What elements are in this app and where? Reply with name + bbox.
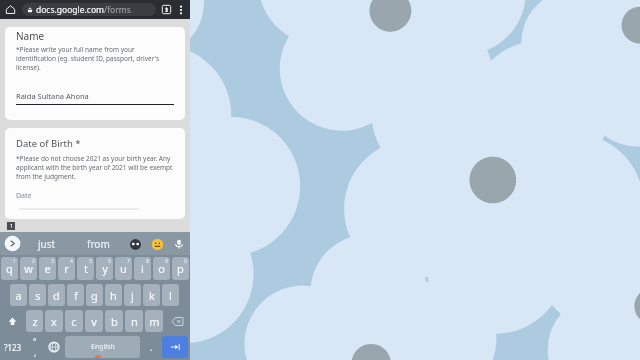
button[interactable]: from bbox=[72, 232, 124, 255]
button[interactable]: z bbox=[26, 310, 43, 332]
button[interactable]: o bbox=[153, 257, 170, 280]
button[interactable]: just bbox=[21, 232, 72, 255]
button[interactable]: b bbox=[105, 310, 123, 332]
staticText: g bbox=[91, 288, 98, 303]
staticText: 1 bbox=[13, 258, 16, 265]
button[interactable]: f bbox=[67, 284, 84, 306]
staticText: i bbox=[141, 261, 144, 276]
staticText: 9 bbox=[165, 258, 168, 265]
button[interactable]: Space bbox=[65, 336, 140, 358]
staticText: y bbox=[102, 261, 108, 276]
button[interactable]: a bbox=[10, 284, 27, 306]
button[interactable]: More suggestions bbox=[4, 235, 21, 252]
button[interactable]: d bbox=[48, 284, 65, 306]
staticText: docs.google.com bbox=[36, 4, 104, 16]
button[interactable]: r bbox=[58, 257, 75, 280]
button[interactable]: i bbox=[134, 257, 151, 280]
staticText: just bbox=[38, 237, 56, 251]
button[interactable]: c bbox=[65, 310, 83, 332]
staticText: 1 bbox=[10, 223, 13, 230]
staticText: o bbox=[158, 261, 165, 276]
button[interactable]: n bbox=[125, 310, 143, 332]
staticText: n bbox=[131, 314, 138, 329]
button[interactable]: Backspace bbox=[164, 308, 190, 334]
button[interactable]: v bbox=[85, 310, 103, 332]
staticText: from bbox=[87, 237, 110, 251]
staticText: p bbox=[177, 261, 184, 276]
button[interactable]: p bbox=[172, 257, 189, 280]
staticText: r bbox=[64, 261, 69, 276]
staticText: ?123 bbox=[4, 342, 22, 353]
staticText: 3 bbox=[51, 258, 54, 265]
staticText: t bbox=[84, 261, 88, 276]
staticText: u bbox=[120, 261, 127, 276]
button[interactable]: Enter bbox=[162, 336, 188, 358]
button[interactable]: w bbox=[20, 257, 37, 280]
staticText: d bbox=[53, 288, 60, 303]
staticText: x bbox=[51, 314, 57, 329]
staticText: f bbox=[74, 288, 78, 303]
button[interactable]: g bbox=[86, 284, 103, 306]
staticText: 0 bbox=[184, 258, 187, 265]
button[interactable]: s bbox=[29, 284, 46, 306]
staticText: , bbox=[34, 347, 37, 358]
button[interactable]: Emoji bbox=[146, 233, 168, 255]
staticText: s bbox=[35, 288, 41, 303]
staticText: c bbox=[71, 314, 77, 329]
staticText: 2 bbox=[32, 258, 35, 265]
staticText: ° bbox=[33, 336, 37, 347]
staticText: w bbox=[24, 261, 33, 276]
button[interactable]: docs.google.com bbox=[22, 3, 156, 16]
staticText: e bbox=[44, 261, 51, 276]
button[interactable]: j bbox=[124, 284, 141, 306]
staticText: z bbox=[32, 314, 38, 329]
staticText: h bbox=[110, 288, 117, 303]
staticText: English bbox=[91, 342, 115, 352]
button[interactable]: y bbox=[96, 257, 113, 280]
staticText: j bbox=[131, 288, 134, 303]
staticText: q bbox=[6, 261, 13, 276]
button[interactable]: Tabs bbox=[161, 4, 172, 15]
staticText: v bbox=[91, 314, 97, 329]
button[interactable]: e bbox=[39, 257, 56, 280]
button[interactable]: Shift bbox=[0, 308, 25, 334]
staticText: 8 bbox=[146, 258, 149, 265]
button[interactable]: l bbox=[162, 284, 179, 306]
button[interactable]: Alien emoji bbox=[124, 233, 146, 255]
button[interactable]: . bbox=[142, 334, 160, 360]
button[interactable]: m bbox=[145, 310, 163, 332]
button[interactable]: Change language bbox=[44, 334, 63, 360]
staticText: k bbox=[149, 288, 155, 303]
button[interactable]: x bbox=[45, 310, 63, 332]
staticText: a bbox=[15, 288, 22, 303]
staticText: l bbox=[169, 288, 172, 303]
button[interactable]: h bbox=[105, 284, 122, 306]
staticText: *Please do not choose 2021 as your birth… bbox=[16, 154, 174, 181]
button[interactable]: Page indicator bbox=[7, 222, 15, 230]
staticText: /forms bbox=[104, 4, 131, 16]
staticText: m bbox=[149, 314, 160, 329]
staticText: 7 bbox=[127, 258, 130, 265]
button[interactable]: q bbox=[1, 257, 18, 280]
staticText: 4 bbox=[70, 258, 73, 265]
staticText: Date bbox=[16, 191, 32, 201]
staticText: 6 bbox=[108, 258, 111, 265]
staticText: 3 bbox=[165, 6, 169, 13]
staticText: Raida Sultana Ahona bbox=[16, 91, 89, 101]
button[interactable]: Home bbox=[5, 4, 16, 15]
button[interactable]: k bbox=[143, 284, 160, 306]
button[interactable]: ° bbox=[26, 334, 44, 360]
button[interactable]: More options bbox=[177, 4, 185, 16]
staticText: Name bbox=[16, 29, 45, 43]
staticText: b bbox=[111, 314, 118, 329]
staticText: Date of Birth * bbox=[16, 137, 81, 150]
staticText: *Please write your full name from your i… bbox=[16, 45, 174, 72]
staticText: . bbox=[150, 341, 153, 353]
staticText: 5 bbox=[89, 258, 92, 265]
button[interactable]: Voice input bbox=[168, 233, 190, 255]
button[interactable]: u bbox=[115, 257, 132, 280]
button[interactable]: ?123 bbox=[0, 334, 26, 360]
button[interactable]: t bbox=[77, 257, 94, 280]
